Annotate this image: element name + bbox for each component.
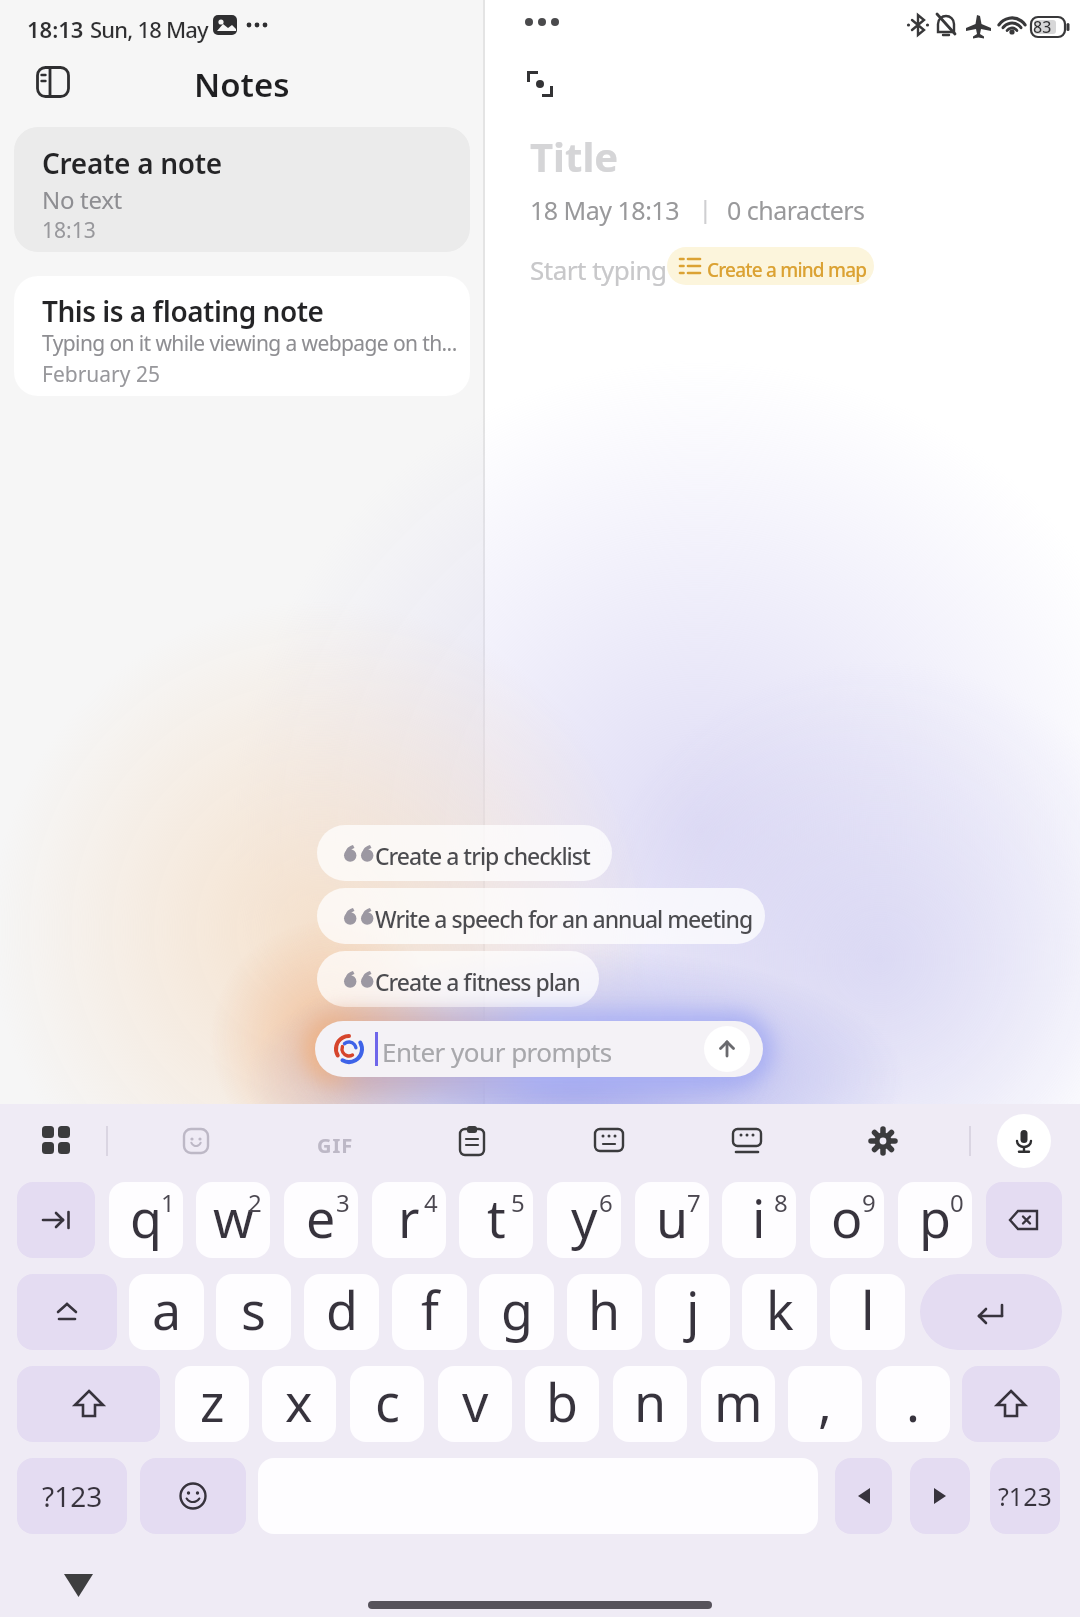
button[interactable] [835,1458,892,1534]
button[interactable] [17,1366,160,1442]
staticText: r [398,1182,420,1253]
staticText: z [200,1366,225,1437]
staticText: l [861,1274,875,1345]
staticText: 8 [774,1186,788,1219]
staticText: 2 [248,1186,262,1219]
button[interactable]: o [810,1182,884,1258]
staticText: c [375,1366,400,1437]
button[interactable]: Create a trip checklist [317,825,612,881]
staticText: Notes [194,62,290,107]
staticText: Create a fitness plan [375,966,580,997]
button[interactable] [459,1126,485,1156]
staticText: h [588,1274,621,1345]
button[interactable]: ?123 [990,1458,1060,1534]
button[interactable]: z [175,1366,249,1442]
button[interactable] [42,1126,72,1156]
button[interactable] [527,71,553,97]
staticText: 83 [1033,16,1052,38]
button[interactable] [64,1572,96,1598]
button[interactable]: w [196,1182,270,1258]
button[interactable]: r [372,1182,446,1258]
staticText: t [487,1182,506,1253]
button[interactable]: Enter your prompts [315,1021,763,1077]
staticText: Typing on it while viewing a webpage on … [42,329,457,358]
staticText: 9 [862,1186,876,1219]
staticText: s [241,1274,266,1345]
staticText: m [714,1366,763,1437]
staticText: o [831,1182,863,1253]
button[interactable]: v [438,1366,512,1442]
button[interactable]: q [109,1182,183,1258]
staticText: Create a mind map [707,257,867,283]
button[interactable] [140,1458,246,1534]
button[interactable]: e [284,1182,358,1258]
button[interactable]: This is a floating note [14,276,470,396]
staticText: GIF [317,1132,354,1159]
staticText: 4 [424,1186,438,1219]
button[interactable] [36,66,70,98]
button[interactable]: s [216,1274,291,1350]
button[interactable]: Write a speech for an annual meeting [317,888,765,944]
button[interactable]: ?123 [17,1458,127,1534]
staticText: No text [42,183,122,216]
button[interactable] [17,1274,117,1350]
staticText: ?123 [998,1479,1052,1513]
button[interactable]: j [655,1274,730,1350]
button[interactable]: k [742,1274,817,1350]
button[interactable]: , [788,1366,862,1442]
button[interactable]: Create a note [14,127,470,252]
button[interactable] [997,1114,1051,1168]
button[interactable]: u [635,1182,709,1258]
button[interactable] [704,1026,750,1072]
staticText: Write a speech for an annual meeting [375,903,753,934]
button[interactable]: h [567,1274,642,1350]
staticText: Sun, 18 May [90,14,208,44]
staticText: q [130,1182,162,1253]
button[interactable] [910,1458,970,1534]
button[interactable]: n [613,1366,687,1442]
button[interactable] [595,1129,623,1153]
staticText: 6 [599,1186,613,1219]
button[interactable]: c [350,1366,424,1442]
button[interactable] [920,1274,1062,1350]
button[interactable]: t [459,1182,533,1258]
staticText: 7 [687,1186,701,1219]
staticText: 5 [511,1186,525,1219]
button[interactable]: y [547,1182,621,1258]
staticText: e [306,1182,336,1253]
staticText: February 25 [42,360,160,389]
staticText: v [462,1366,489,1437]
button[interactable]: . [876,1366,950,1442]
button[interactable]: p [898,1182,972,1258]
button[interactable]: f [392,1274,467,1350]
staticText: g [501,1274,533,1345]
button[interactable]: Create a mind map [667,247,874,285]
staticText: 0 characters [727,193,865,227]
button[interactable]: m [701,1366,775,1442]
button[interactable] [17,1182,95,1258]
staticText: Create a trip checklist [375,840,590,871]
button[interactable]: d [304,1274,379,1350]
staticText: 18:13 [42,216,96,245]
staticText: d [326,1274,358,1345]
staticText: | [699,193,712,224]
staticText: j [686,1274,700,1345]
button[interactable] [962,1366,1060,1442]
button[interactable] [183,1128,209,1154]
button[interactable] [986,1182,1062,1258]
button[interactable]: Create a fitness plan [317,951,599,1007]
button[interactable]: l [830,1274,905,1350]
button[interactable]: b [525,1366,599,1442]
staticText: ?123 [42,1477,103,1515]
button[interactable] [869,1127,897,1155]
staticText: Title [530,129,619,183]
button[interactable]: x [262,1366,336,1442]
button[interactable]: g [479,1274,554,1350]
button[interactable] [733,1129,761,1155]
button[interactable]: a [129,1274,204,1350]
staticText: . [906,1366,920,1437]
button[interactable]: i [722,1182,796,1258]
staticText: 3 [336,1186,350,1219]
staticText: u [656,1182,689,1253]
